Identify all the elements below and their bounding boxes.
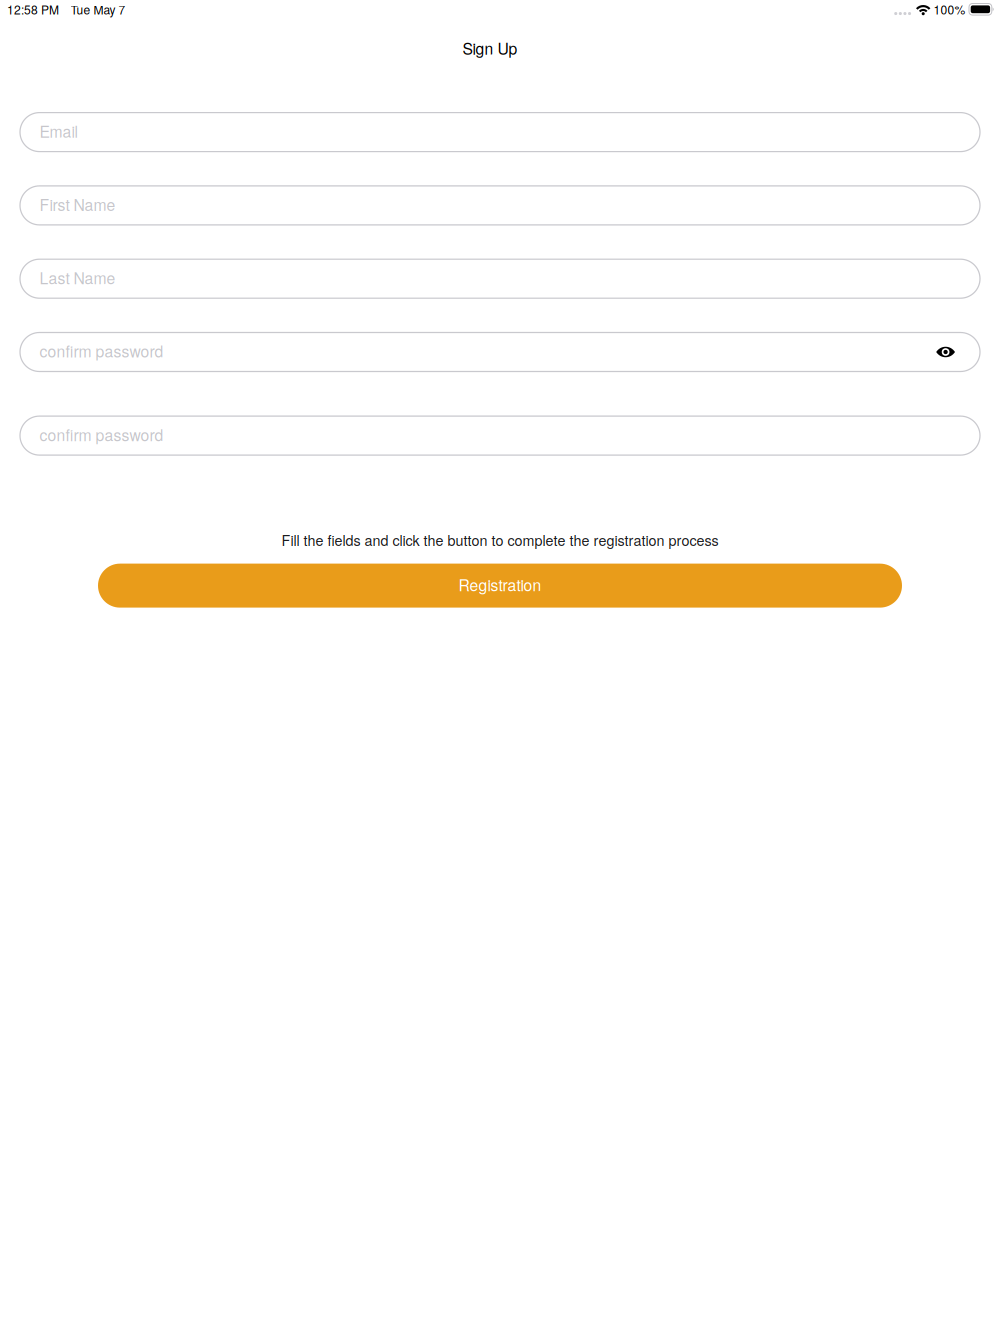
- staticText: First Name: [39, 193, 115, 215]
- button[interactable]: confirm password: [20, 416, 980, 455]
- button[interactable]: Email: [20, 113, 980, 152]
- button[interactable]: confirm password: [20, 332, 980, 371]
- staticText: 12:58 PM: [7, 1, 59, 18]
- staticText: Fill the fields and click the button to …: [281, 530, 718, 550]
- staticText: 100%: [933, 1, 965, 18]
- staticText: Registration: [458, 573, 541, 596]
- staticText: Sign Up: [462, 37, 517, 59]
- staticText: confirm password: [39, 339, 163, 362]
- staticText: confirm password: [39, 423, 163, 446]
- button[interactable]: Show password: [928, 336, 963, 368]
- staticText: Email: [39, 120, 77, 142]
- button[interactable]: First Name: [20, 186, 980, 225]
- staticText: Last Name: [39, 266, 115, 289]
- button[interactable]: Last Name: [20, 259, 980, 298]
- button[interactable]: Registration: [98, 564, 902, 608]
- staticText: Tue May 7: [70, 1, 125, 18]
